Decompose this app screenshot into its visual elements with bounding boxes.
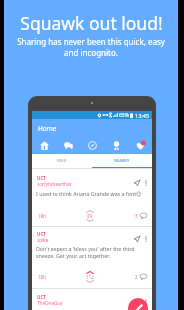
staticText: 13:45 [135,112,150,119]
staticText: 3 [135,213,138,219]
staticText: Sharing has never been this quick, easy … [15,36,167,59]
button[interactable]: Compose post [128,298,148,310]
button[interactable]: Explore [80,137,104,154]
button[interactable]: Upvote [86,210,94,213]
staticText: 18h [38,274,46,280]
staticText: sneeze. Get your act together. [36,252,110,259]
button[interactable]: Share [132,178,141,187]
button[interactable]: UCT [32,169,152,227]
button[interactable]: NEARBY [92,154,152,167]
staticText: 65% [119,112,129,119]
button[interactable]: UCT [32,227,152,289]
staticText: spike [37,237,49,243]
button[interactable]: Comments [135,274,147,280]
staticText: sorrytohearthat [37,181,72,187]
button[interactable]: Likes [128,137,152,154]
staticText: UCT [37,294,46,300]
button[interactable]: UCT [32,289,152,310]
staticText: Squawk out loud! [20,11,163,35]
staticText: TheOneGuy [37,300,63,306]
button[interactable]: More options [141,297,150,306]
button[interactable]: Upvote [86,271,94,274]
button[interactable]: FEED [32,154,92,167]
button[interactable]: More options [141,234,150,243]
staticText: NEARBY [114,158,130,163]
staticText: I used to think Ariana Grande was a font… [36,190,142,197]
staticText: UCT [37,231,46,237]
button[interactable]: Downvote [86,219,94,222]
button[interactable]: Home [32,137,56,154]
staticText: 2 [135,274,138,280]
button[interactable]: Downvote [86,280,94,283]
button[interactable]: Comments [135,213,147,219]
staticText: UCT [37,175,46,181]
button[interactable]: Share [132,297,141,306]
button[interactable]: Profile [104,137,128,154]
staticText: Don't expect a 'bless you' after the thi… [36,245,135,252]
staticText: 18h [38,213,46,219]
button[interactable]: More options [141,178,150,187]
staticText: FEED [57,158,67,163]
button[interactable]: Messages [56,137,80,154]
staticText: 112 [86,274,94,280]
staticText: Home [38,124,57,133]
staticText: 29 [87,213,93,219]
button[interactable]: Share [132,234,141,243]
